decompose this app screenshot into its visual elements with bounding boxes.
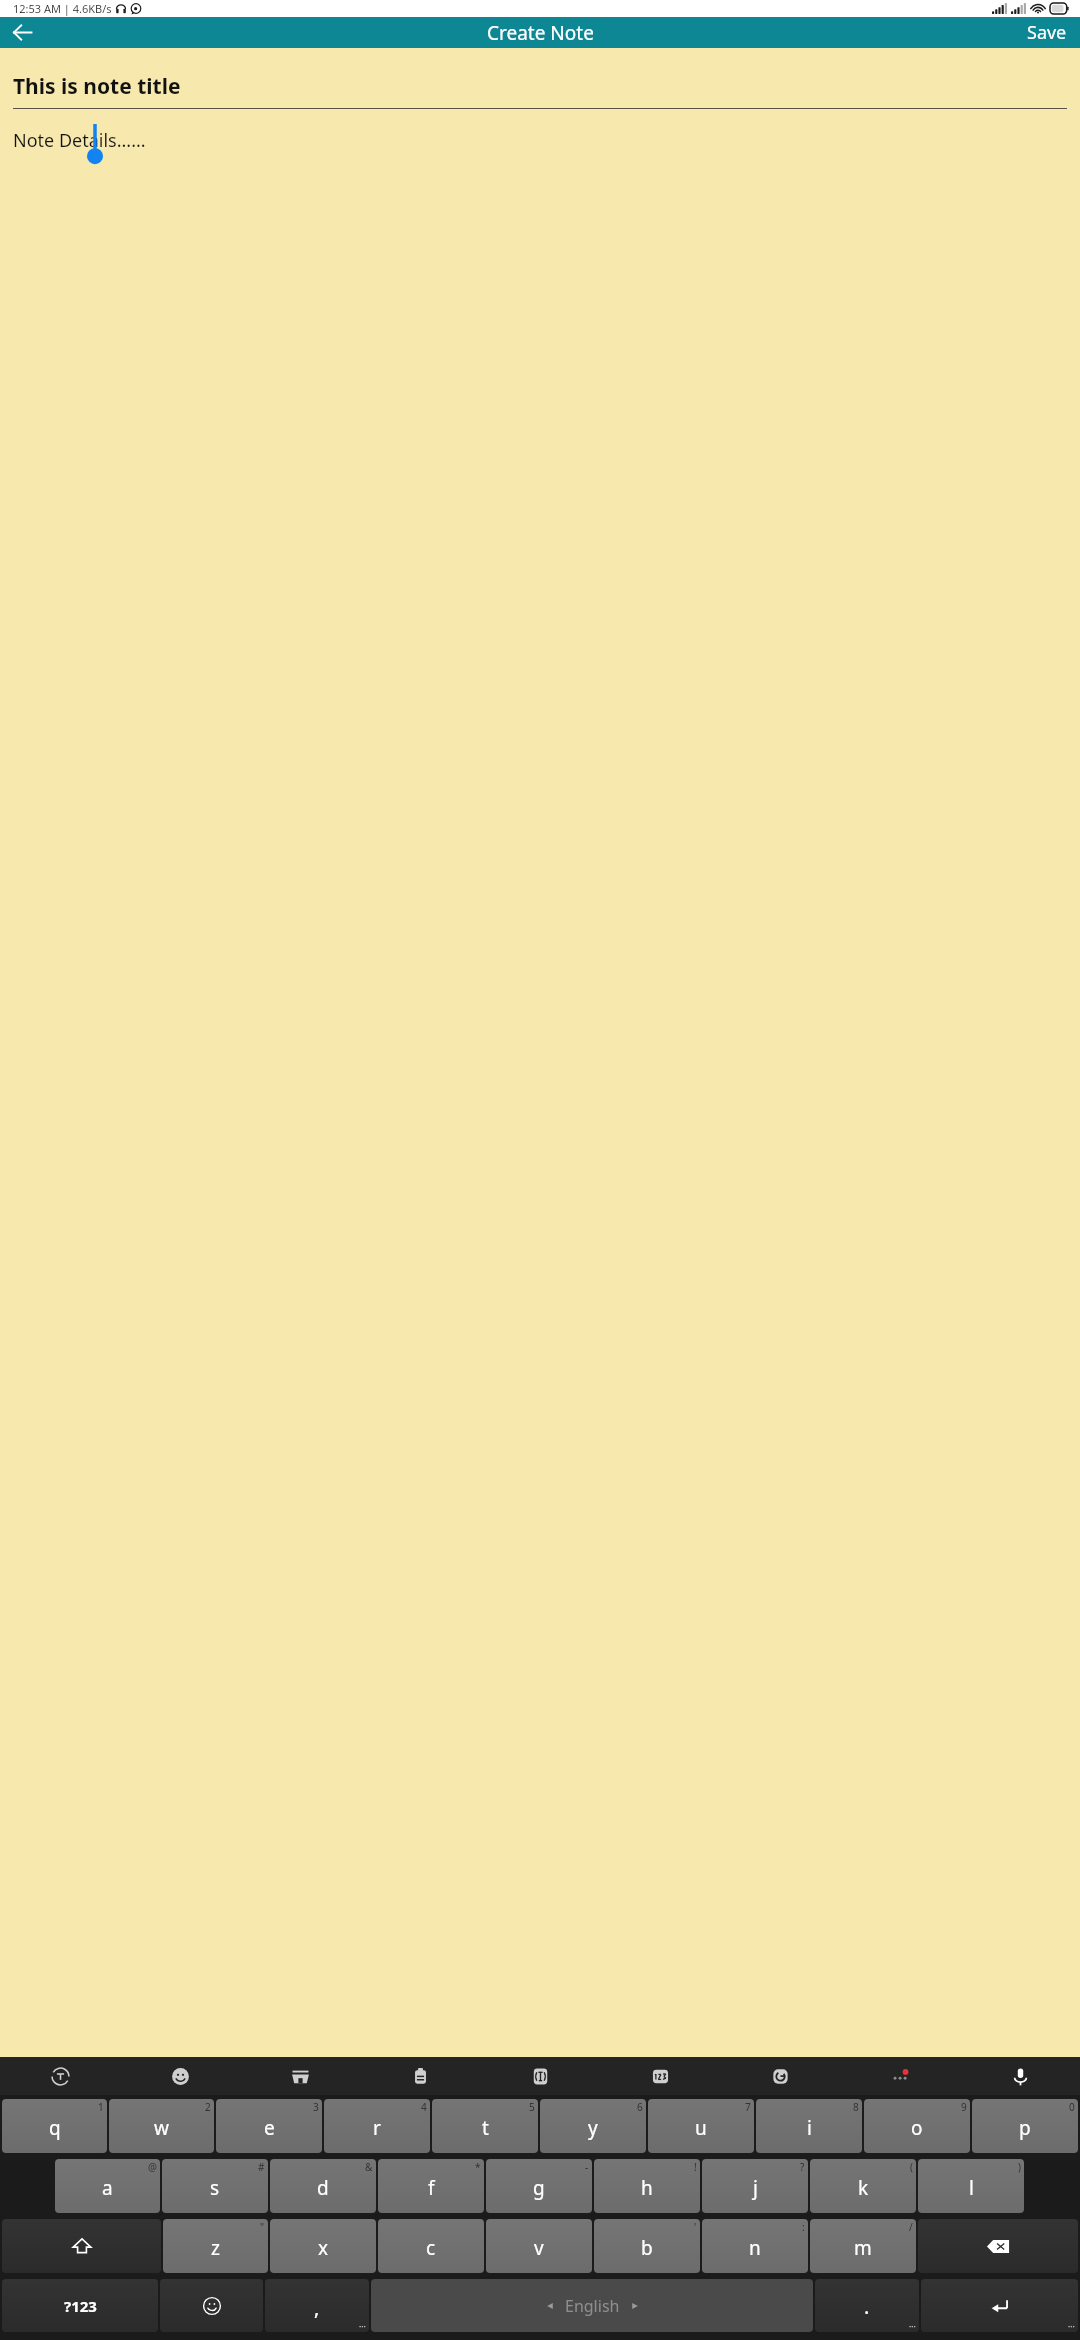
staticText: 4 [421,2100,427,2114]
button[interactable]: 4 [324,2099,430,2153]
button[interactable]: ? [702,2159,808,2213]
staticText: . [864,2293,870,2320]
staticText: h [641,2175,653,2201]
staticText: j [753,2175,758,2201]
staticText: z [211,2235,220,2261]
button[interactable]: " [163,2219,268,2273]
button[interactable]: Clipboard [360,2057,480,2095]
staticText: 7 [745,2100,751,2114]
button[interactable]: Numbers [600,2057,720,2095]
button[interactable]: Note Details...... [13,128,1067,2057]
staticText: English [565,2295,620,2317]
button[interactable]: & [270,2159,376,2213]
button[interactable]: , [265,2279,369,2332]
staticText: u [695,2115,707,2141]
staticText: f [428,2175,435,2201]
staticText: 5 [529,2100,535,2114]
staticText: Create Note [487,20,594,46]
staticText: b [641,2235,653,2261]
button[interactable]: Voice input [960,2057,1080,2095]
button[interactable]: Save [1014,17,1080,48]
staticText: ' [694,2220,697,2234]
staticText: w [154,2115,169,2141]
button[interactable]: Shift [2,2219,161,2273]
button[interactable]: More options [840,2057,960,2095]
staticText: # [258,2160,265,2174]
button[interactable]: 7 [648,2099,754,2153]
staticText: Note Details...... [13,128,146,153]
staticText: * [475,2160,481,2174]
staticText: y [588,2115,598,2141]
staticText: 2 [205,2100,211,2114]
staticText: o [911,2115,923,2141]
staticText: x [318,2235,329,2261]
staticText: 1 [98,2100,104,2114]
button[interactable]: This is note title [13,72,1067,109]
staticText: q [49,2115,61,2141]
button[interactable]: 6 [540,2099,646,2153]
button[interactable]: Space [371,2279,813,2332]
staticText: ) [1018,2160,1021,2174]
button[interactable]: Emoji [120,2057,240,2095]
staticText: : [802,2220,805,2234]
staticText: g [533,2175,545,2201]
staticText: c [426,2235,436,2261]
button[interactable]: ) [918,2159,1024,2213]
staticText: ( [910,2160,913,2174]
button[interactable]: / [810,2219,916,2273]
staticText: ?123 [64,2296,97,2316]
staticText: - [585,2160,589,2174]
staticText: ••• [359,2323,366,2331]
button[interactable]: @ [55,2159,160,2213]
button[interactable]: Sticker store [240,2057,360,2095]
button[interactable]: Enter [921,2279,1078,2332]
staticText: 6 [637,2100,643,2114]
staticText: This is note title [13,72,181,101]
button[interactable]: Backspace [918,2219,1078,2273]
button[interactable]: ' [594,2219,700,2273]
staticText: v [534,2235,544,2261]
button[interactable]: Emoji [160,2279,263,2332]
button[interactable]: 8 [756,2099,862,2153]
button[interactable]: 1 [2,2099,107,2153]
staticText: 3 [313,2100,319,2114]
staticText: ••• [1068,2323,1075,2331]
staticText: r [373,2115,381,2141]
staticText: d [317,2175,329,2201]
button[interactable]: v [486,2219,592,2273]
staticText: & [365,2160,373,2174]
button[interactable]: Back [4,17,40,48]
staticText: 8 [853,2100,859,2114]
button[interactable]: Text editing [480,2057,600,2095]
staticText: , [314,2294,320,2321]
button[interactable]: # [162,2159,268,2213]
staticText: k [858,2175,869,2201]
staticText: ! [694,2160,697,2174]
staticText: Save [1027,20,1067,45]
button[interactable]: ( [810,2159,916,2213]
button[interactable]: GIF [720,2057,840,2095]
button[interactable]: * [378,2159,484,2213]
button[interactable]: x [270,2219,376,2273]
staticText: s [210,2175,220,2201]
button[interactable]: - [486,2159,592,2213]
staticText: e [264,2115,275,2141]
staticText: m [854,2235,872,2261]
button[interactable]: 9 [864,2099,970,2153]
staticText: @ [148,2160,157,2174]
button[interactable]: 3 [216,2099,322,2153]
button[interactable]: 2 [109,2099,214,2153]
button[interactable]: . [815,2279,919,2332]
button[interactable]: c [378,2219,484,2273]
button[interactable]: ! [594,2159,700,2213]
button[interactable]: 5 [432,2099,538,2153]
staticText: n [749,2235,761,2261]
staticText: 0 [1069,2100,1075,2114]
staticText: " [260,2220,265,2234]
button[interactable]: Translate [0,2057,120,2095]
button[interactable]: ?123 [2,2279,158,2332]
staticText: ••• [909,2323,916,2331]
button[interactable]: 0 [972,2099,1078,2153]
staticText: l [969,2175,974,2201]
button[interactable]: : [702,2219,808,2273]
